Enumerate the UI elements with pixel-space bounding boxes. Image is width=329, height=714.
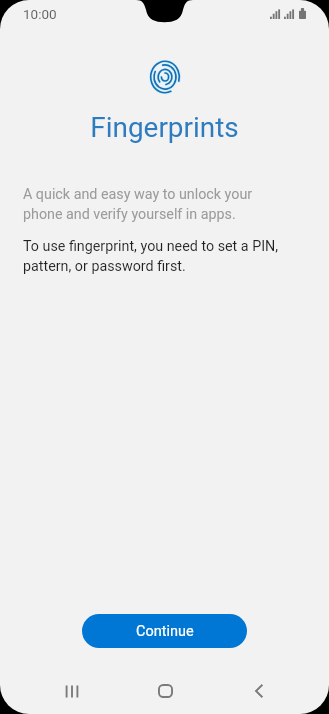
staticText: To use fingerprint, you need to set a PI… [23,238,287,274]
button[interactable]: Back [235,668,283,714]
button[interactable]: Home [141,668,189,714]
button[interactable]: Recents [48,668,96,714]
staticText: Continue [136,623,194,640]
staticText: Fingerprints [0,111,329,144]
staticText: A quick and easy way to unlock your phon… [23,186,287,222]
button[interactable]: Continue [82,614,247,648]
staticText: 10:00 [23,6,57,22]
